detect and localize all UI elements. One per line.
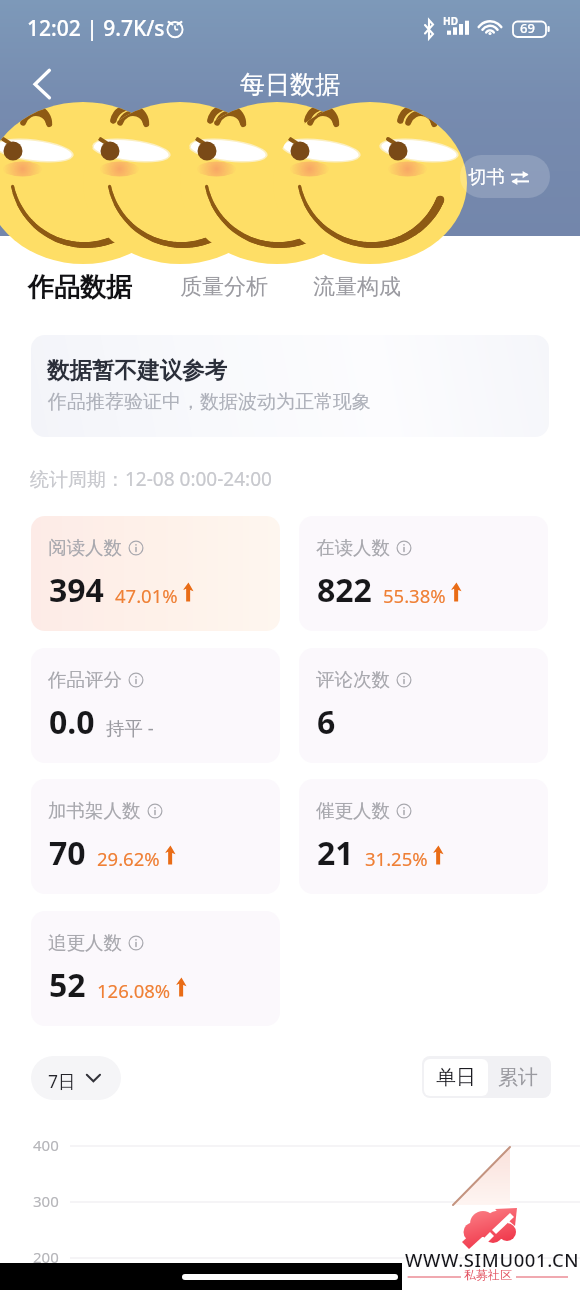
staticText: HD: [443, 14, 458, 28]
staticText: 52: [49, 963, 86, 1007]
staticText: 催更人数: [316, 799, 390, 822]
staticText: 加书架人数: [48, 799, 141, 822]
staticText: 31.25%: [365, 846, 428, 871]
staticText: 质量分析: [180, 273, 268, 301]
button[interactable]: [31, 911, 280, 1026]
staticText: 200: [33, 1247, 59, 1267]
staticText: 394: [49, 568, 104, 612]
staticText: 私募社区: [464, 1267, 512, 1282]
staticText: 切书: [468, 165, 505, 188]
staticText: 持平 -: [106, 715, 154, 740]
button[interactable]: [424, 1059, 488, 1096]
button[interactable]: [299, 779, 548, 894]
staticText: 作品推荐验证中，数据波动为正常现象: [48, 390, 371, 414]
staticText: 数据暂不建议参考: [47, 356, 227, 384]
staticText: 累计: [498, 1065, 538, 1090]
staticText: 21: [317, 831, 354, 875]
button[interactable]: [299, 648, 548, 763]
staticText: 在读人数: [316, 536, 390, 559]
staticText: 0.0: [49, 700, 95, 744]
button[interactable]: 切书: [460, 155, 550, 198]
button[interactable]: Back: [18, 62, 64, 108]
staticText: WWW.SIMU001.CN: [405, 1247, 580, 1272]
staticText: 阅读人数: [48, 536, 122, 559]
button[interactable]: [489, 1059, 549, 1095]
button[interactable]: [31, 335, 549, 437]
button[interactable]: [174, 269, 272, 303]
staticText: 单日: [436, 1065, 476, 1090]
staticText: 6: [317, 700, 336, 744]
staticText: 7日: [48, 1069, 76, 1093]
staticText: 12:02 | 9.7K/s: [27, 14, 165, 43]
staticText: 47.01%: [115, 583, 178, 608]
staticText: 统计周期：12-08 0:00-24:00: [30, 466, 272, 492]
staticText: 作品数据: [28, 271, 132, 304]
staticText: 69: [520, 19, 535, 37]
button[interactable]: [31, 1056, 121, 1100]
button[interactable]: [31, 779, 280, 894]
button[interactable]: [31, 516, 280, 631]
staticText: 作品评分: [48, 668, 122, 691]
staticText: 流量构成: [313, 273, 401, 301]
staticText: 400: [33, 1135, 59, 1155]
staticText: 每日数据: [0, 69, 580, 100]
staticText: 300: [33, 1191, 59, 1211]
staticText: 70: [49, 831, 86, 875]
button[interactable]: [307, 269, 405, 303]
button[interactable]: [299, 516, 548, 631]
staticText: 55.38%: [383, 583, 446, 608]
staticText: 评论次数: [316, 668, 390, 691]
button[interactable]: [22, 267, 140, 305]
staticText: 29.62%: [97, 846, 160, 871]
staticText: 822: [317, 568, 372, 612]
button[interactable]: [31, 648, 280, 763]
staticText: 追更人数: [48, 931, 122, 954]
staticText: 126.08%: [97, 978, 171, 1003]
